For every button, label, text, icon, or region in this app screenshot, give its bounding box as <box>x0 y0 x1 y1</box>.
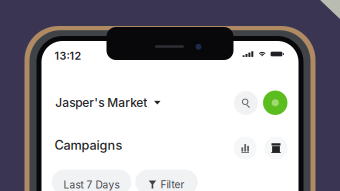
button[interactable]: Search <box>234 91 258 115</box>
staticText: 13:12 <box>54 49 81 62</box>
button[interactable]: Account <box>263 90 287 115</box>
button[interactable]: Last 7 Days <box>52 170 131 191</box>
button[interactable]: Jasper's Market <box>55 92 160 113</box>
staticText: Jasper's Market <box>55 95 147 110</box>
staticText: Last 7 Days <box>63 179 119 191</box>
button[interactable]: Overview <box>234 136 257 159</box>
staticText: Filter <box>160 178 184 191</box>
staticText: Campaigns <box>54 137 122 153</box>
button[interactable]: Filter <box>135 170 198 191</box>
button[interactable]: Store <box>264 136 287 159</box>
